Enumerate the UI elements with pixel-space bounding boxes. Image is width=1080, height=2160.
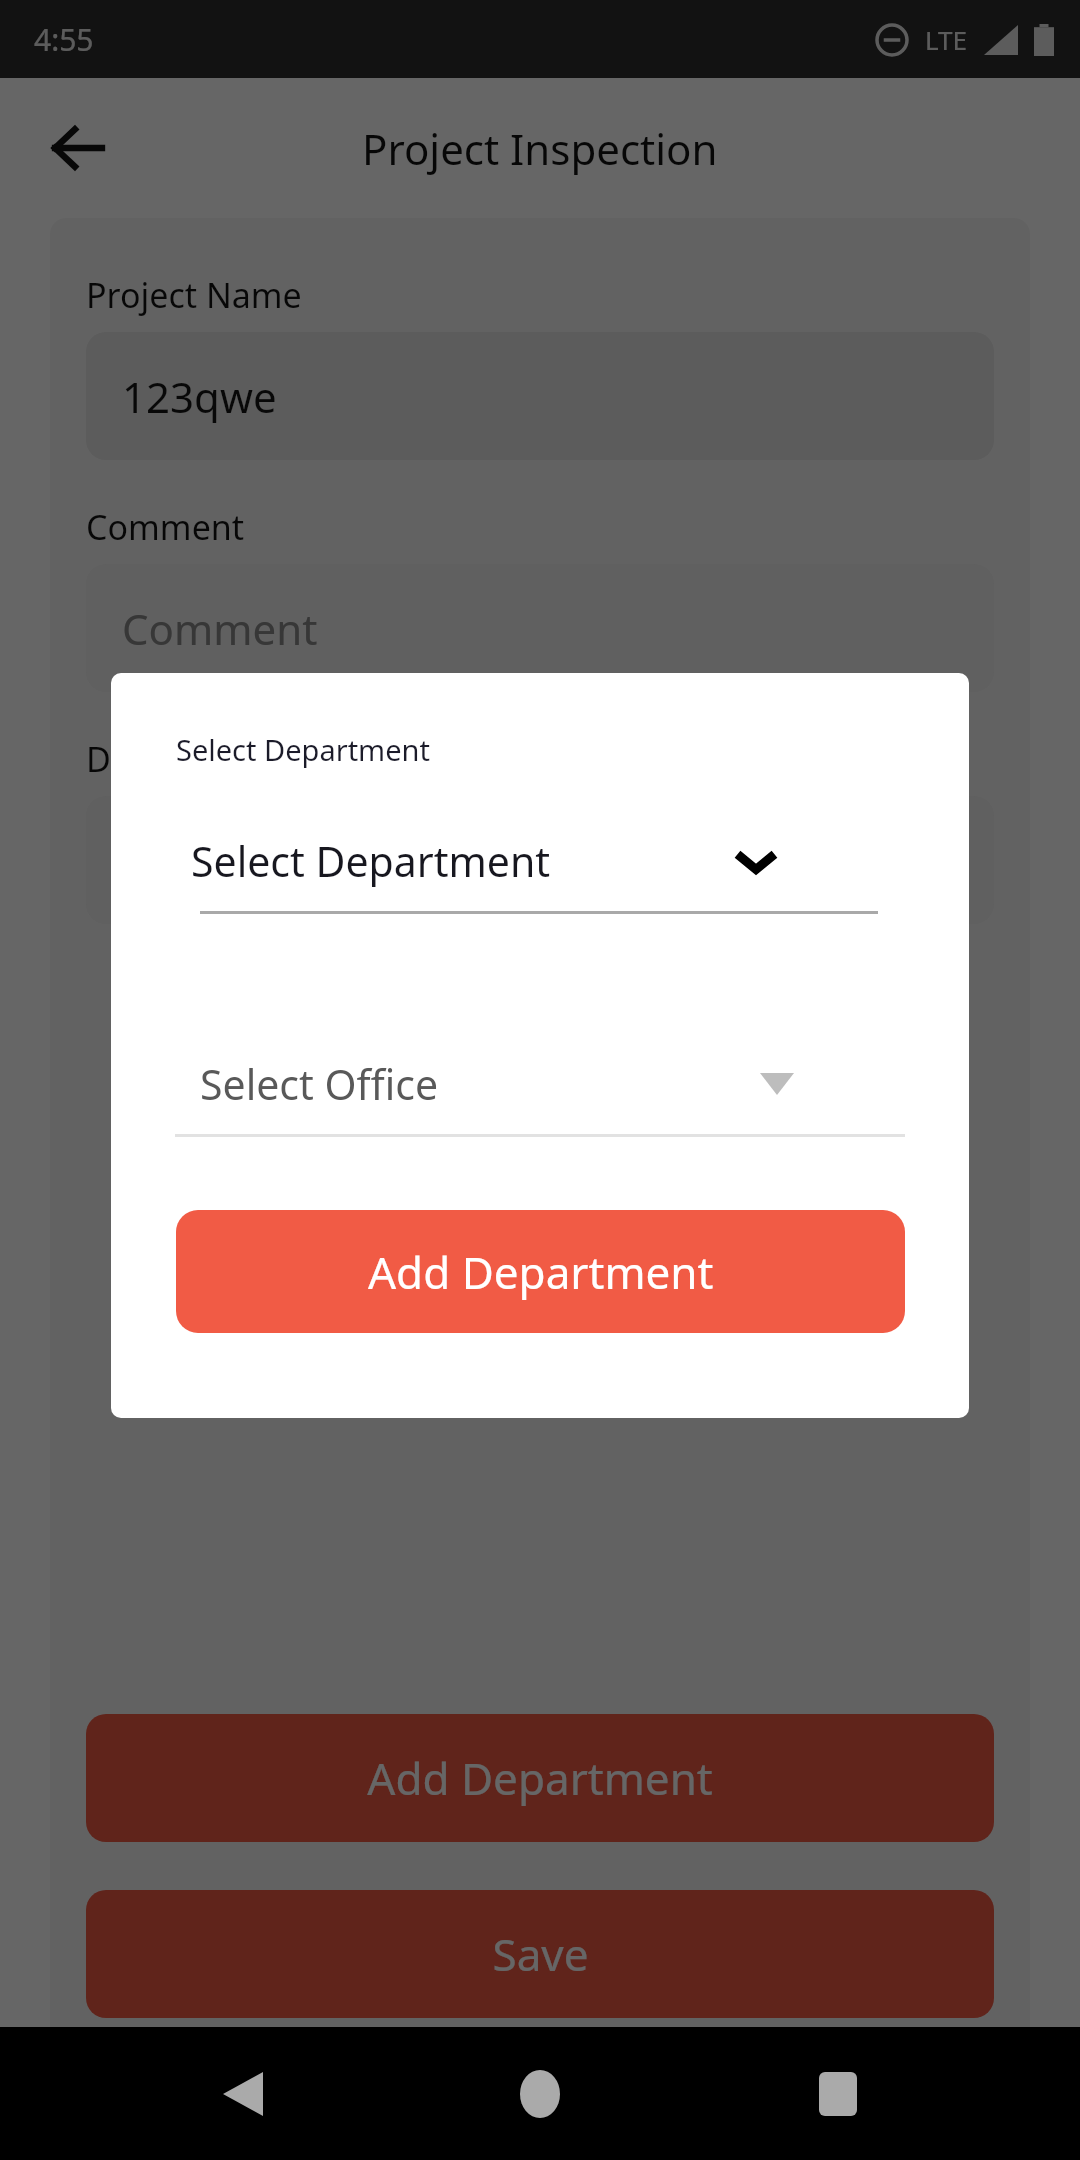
button[interactable]: Comment [86, 564, 994, 692]
staticText: Save [492, 1924, 589, 1984]
button[interactable]: Back [188, 2039, 298, 2149]
staticText: Select Department [191, 833, 551, 889]
staticText: Department [86, 736, 281, 782]
staticText: Project Name [86, 272, 302, 318]
button[interactable]: Add Department [176, 1210, 905, 1333]
staticText: 123qwe [122, 368, 277, 425]
staticText: Add Department [368, 1242, 714, 1302]
staticText: 4:55 [34, 19, 94, 60]
button[interactable]: Back [40, 110, 116, 186]
staticText: Project Inspection [362, 120, 718, 177]
staticText: Comment [86, 504, 245, 550]
staticText: LTE [925, 22, 968, 57]
staticText: Add Department [367, 1748, 713, 1808]
staticText: Select Office [200, 1056, 439, 1112]
button[interactable]: Home [485, 2039, 595, 2149]
button[interactable] [86, 796, 994, 924]
button[interactable]: Select Office [111, 1034, 969, 1134]
staticText: Comment [122, 600, 318, 657]
button[interactable]: Select Department [111, 811, 969, 911]
button[interactable]: Recent apps [783, 2039, 893, 2149]
staticText: Select Department [176, 730, 430, 769]
button[interactable]: Add Department [86, 1714, 994, 1842]
button[interactable]: Save [86, 1890, 994, 2018]
button[interactable]: 123qwe [86, 332, 994, 460]
